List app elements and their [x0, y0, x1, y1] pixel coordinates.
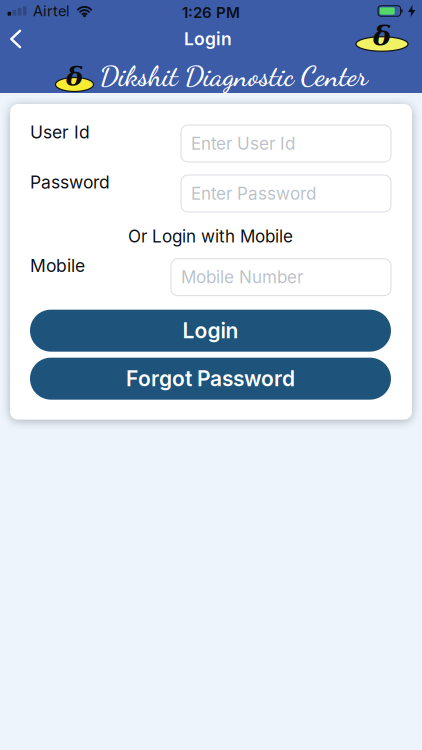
- staticText: Password: [30, 171, 110, 193]
- staticText: Forgot Password: [126, 366, 295, 391]
- staticText: User Id: [30, 121, 90, 143]
- staticText: Or Login with Mobile: [128, 226, 293, 247]
- staticText: 1:26 PM: [182, 3, 240, 22]
- staticText: Enter User Id: [191, 133, 295, 154]
- button[interactable]: Mobile Number: [171, 259, 391, 296]
- button[interactable]: Back: [0, 23, 37, 54]
- button[interactable]: Forgot Password: [30, 358, 391, 400]
- staticText: Login: [184, 28, 232, 49]
- staticText: Login: [182, 318, 238, 343]
- staticText: δ: [373, 20, 391, 52]
- button[interactable]: Enter User Id: [181, 125, 391, 162]
- staticText: Airtel: [33, 2, 70, 20]
- staticText: Mobile: [30, 255, 85, 276]
- staticText: δ: [66, 61, 83, 92]
- staticText: Dikshit Diagnostic Center: [99, 59, 367, 93]
- button[interactable]: Enter Password: [181, 175, 391, 212]
- button[interactable]: Login: [30, 310, 391, 352]
- staticText: Enter Password: [191, 183, 316, 204]
- staticText: Mobile Number: [181, 267, 303, 287]
